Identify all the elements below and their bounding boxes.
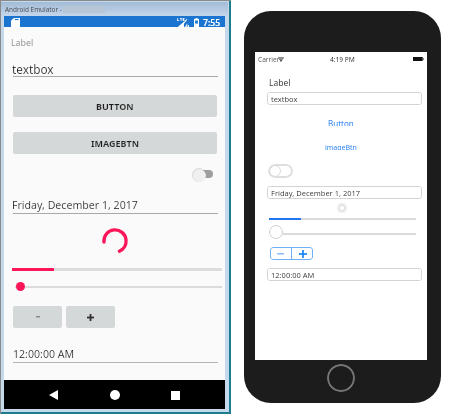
button[interactable]: Toggle switch: [268, 164, 293, 178]
button[interactable]: BUTTON: [13, 95, 217, 117]
staticText: textbox: [271, 94, 298, 104]
staticText: Friday, December 1, 2017: [271, 188, 361, 198]
staticText: Label: [11, 37, 34, 49]
staticText: Button: [328, 118, 354, 126]
button[interactable]: Slider: [269, 225, 283, 239]
button[interactable]: 12:00:00 AM: [267, 268, 422, 281]
button[interactable]: Home button: [327, 364, 355, 392]
button[interactable]: Decrement: [13, 306, 62, 328]
staticText: imageBtn: [325, 143, 357, 150]
staticText: Label: [269, 77, 291, 89]
button[interactable]: Toggle switch: [190, 166, 218, 184]
staticText: 12:00:00 AM: [271, 270, 315, 280]
button[interactable]: Decrement: [270, 247, 291, 260]
button[interactable]: Back: [45, 387, 61, 403]
staticText: 4:19 PM: [330, 55, 355, 64]
button[interactable]: textbox: [267, 92, 422, 105]
button[interactable]: Home: [107, 387, 123, 403]
staticText: Friday, December 1, 2017: [12, 198, 138, 212]
staticText: Android Emulator -: [5, 5, 62, 14]
button[interactable]: Slider: [16, 282, 25, 291]
staticText: BUTTON: [96, 100, 134, 112]
button[interactable]: Increment: [66, 306, 115, 328]
staticText: textbox: [12, 61, 54, 77]
button[interactable]: Friday, December 1, 2017: [267, 186, 422, 199]
staticText: 7:55: [203, 17, 221, 29]
staticText: Carrier: [258, 55, 280, 64]
button[interactable]: imageBtn: [319, 140, 363, 153]
button[interactable]: Recent apps: [167, 387, 183, 403]
button[interactable]: Increment: [292, 247, 313, 260]
button[interactable]: Button: [322, 115, 360, 129]
staticText: 12:00:00 AM: [13, 347, 75, 361]
staticText: IMAGEBTN: [91, 137, 140, 149]
button[interactable]: IMAGEBTN: [13, 132, 217, 154]
